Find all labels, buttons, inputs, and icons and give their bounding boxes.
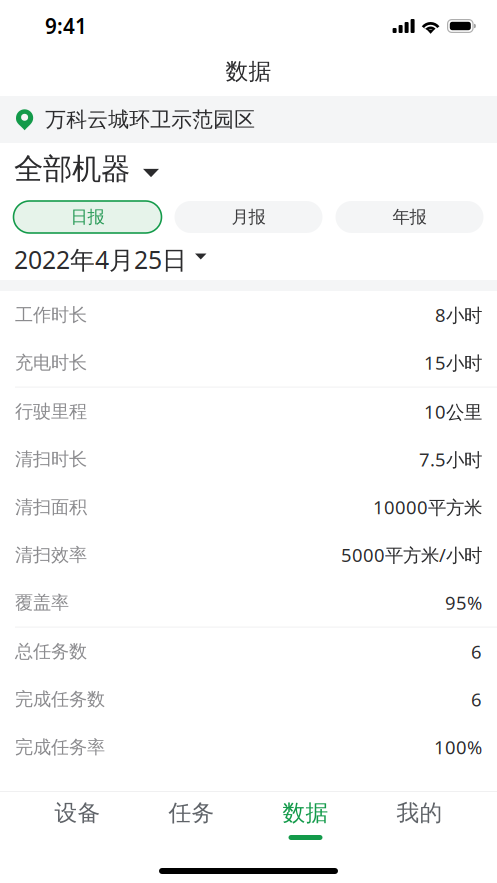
staticText: 8小时 (435, 302, 482, 327)
staticText: 设备 (54, 799, 100, 827)
staticText: 全部机器 (14, 150, 130, 187)
staticText: 年报 (392, 206, 426, 228)
staticText: 我的 (396, 799, 442, 827)
button[interactable]: 日报 (13, 201, 161, 233)
staticText: 10000平方米 (373, 495, 482, 520)
staticText: 100% (434, 735, 482, 760)
staticText: 10公里 (424, 399, 482, 424)
staticText: 日报 (70, 206, 104, 228)
staticText: 工作时长 (15, 303, 87, 326)
staticText: 清扫效率 (15, 543, 87, 566)
button[interactable]: 设备 (20, 793, 134, 848)
staticText: 充电时长 (15, 351, 87, 374)
staticText: 月报 (231, 206, 265, 228)
staticText: 6 (471, 687, 482, 712)
button[interactable]: 2022年4月25日 (0, 239, 497, 280)
staticText: 2022年4月25日 (14, 243, 187, 276)
staticText: 5000平方米/小时 (341, 542, 482, 567)
button[interactable]: 我的 (362, 793, 476, 848)
staticText: 6 (471, 639, 482, 664)
staticText: 行驶里程 (15, 400, 87, 423)
staticText: 任务 (168, 799, 214, 827)
button[interactable]: 数据 (248, 793, 362, 848)
staticText: 数据 (225, 57, 271, 86)
button[interactable]: 任务 (134, 793, 248, 848)
staticText: 15小时 (424, 350, 482, 375)
button[interactable]: 万科云城环卫示范园区 (0, 96, 497, 143)
button[interactable]: 全部机器 (0, 143, 497, 195)
button[interactable]: 年报 (335, 201, 483, 233)
staticText: 95% (445, 590, 482, 615)
staticText: 覆盖率 (15, 591, 69, 614)
staticText: 万科云城环卫示范园区 (45, 106, 255, 133)
button[interactable]: 月报 (174, 201, 322, 233)
staticText: 总任务数 (15, 640, 87, 663)
staticText: 清扫时长 (15, 448, 87, 471)
staticText: 7.5小时 (419, 447, 482, 472)
staticText: 完成任务率 (15, 736, 105, 758)
staticText: 9:41 (45, 12, 87, 40)
staticText: 清扫面积 (15, 496, 87, 518)
staticText: 数据 (282, 799, 328, 827)
staticText: 完成任务数 (15, 688, 105, 711)
